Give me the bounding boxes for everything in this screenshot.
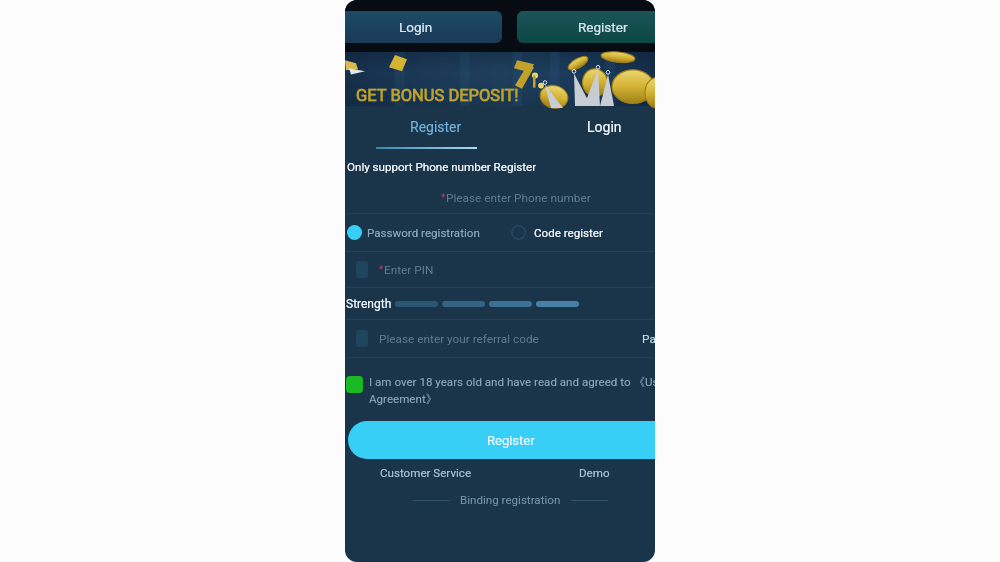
staticText: Register <box>487 433 535 448</box>
button[interactable]: Please enter your referral code <box>379 332 539 346</box>
button[interactable]: Login <box>515 106 655 147</box>
staticText: I am over 18 years old and have read and… <box>369 375 655 407</box>
button[interactable]: Register <box>345 106 515 147</box>
button[interactable]: Binding registration <box>460 493 561 507</box>
button[interactable]: Customer Service <box>345 466 510 480</box>
button[interactable]: Register <box>517 11 655 43</box>
staticText: Customer Service <box>380 466 472 480</box>
staticText: Register <box>578 19 628 35</box>
staticText: Please enter Phone number <box>446 191 591 205</box>
staticText: Demo <box>579 466 610 480</box>
staticText: Register <box>410 119 462 135</box>
staticText: Enter PIN <box>384 263 434 277</box>
button[interactable]: Register <box>348 421 655 459</box>
staticText: GET BONUS DEPOSIT! <box>356 86 519 105</box>
button[interactable]: I am over 18 years old and have read and… <box>345 375 655 407</box>
button[interactable]: Login <box>345 11 502 43</box>
staticText: Login <box>399 19 433 35</box>
button[interactable]: Password registration <box>347 225 480 240</box>
staticText: Code register <box>534 226 603 240</box>
staticText: Only support Phone number Register <box>347 160 537 174</box>
staticText: Login <box>587 119 622 135</box>
staticText: * <box>441 192 446 204</box>
button[interactable]: Paste <box>642 332 655 346</box>
staticText: Strength <box>346 297 392 311</box>
button[interactable]: * <box>345 252 655 287</box>
staticText: * <box>379 264 384 276</box>
button[interactable]: Code register <box>511 225 603 240</box>
button[interactable]: Demo <box>510 466 655 480</box>
staticText: Password registration <box>367 226 480 240</box>
button[interactable]: * <box>345 183 655 213</box>
